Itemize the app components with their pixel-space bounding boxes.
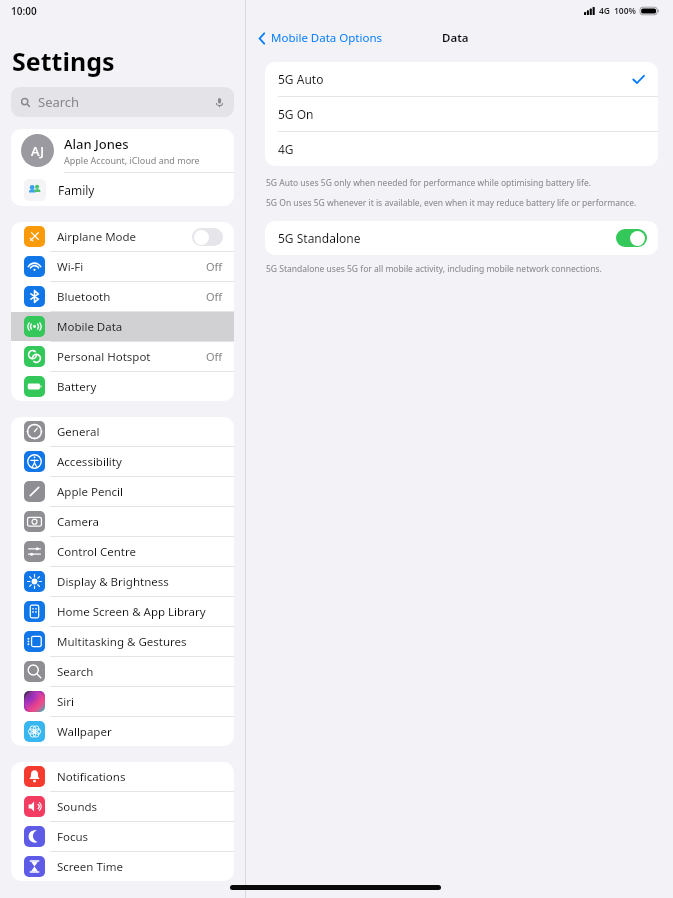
- button[interactable]: Wallpaper: [11, 717, 234, 746]
- staticText: Accessibility: [57, 454, 122, 470]
- staticText: Focus: [57, 829, 89, 845]
- button[interactable]: Display & Brightness: [11, 567, 234, 596]
- button[interactable]: Home Screen & App Library: [11, 597, 234, 626]
- button[interactable]: 5G Auto: [265, 62, 658, 96]
- button[interactable]: Focus: [11, 822, 234, 851]
- staticText: Display & Brightness: [57, 574, 169, 590]
- staticText: Data: [442, 30, 469, 46]
- button[interactable]: Personal Hotspot: [11, 342, 234, 371]
- button[interactable]: Multitasking & Gestures: [11, 627, 234, 656]
- staticText: Multitasking & Gestures: [57, 634, 187, 650]
- staticText: General: [57, 424, 100, 440]
- staticText: Off: [206, 349, 223, 364]
- staticText: Alan Jones: [64, 135, 129, 153]
- staticText: 5G Standalone: [278, 230, 361, 246]
- staticText: 5G On uses 5G whenever it is available, …: [266, 197, 637, 209]
- staticText: Mobile Data: [57, 319, 123, 335]
- staticText: Home Screen & App Library: [57, 604, 206, 620]
- staticText: Settings: [12, 44, 115, 78]
- button[interactable]: Apple Pencil: [11, 477, 234, 506]
- staticText: Camera: [57, 514, 99, 530]
- staticText: Mobile Data Options: [271, 30, 383, 46]
- staticText: 5G Auto uses 5G only when needed for per…: [266, 177, 592, 189]
- button[interactable]: Accessibility: [11, 447, 234, 476]
- staticText: 4G: [599, 5, 611, 17]
- staticText: 4G: [278, 141, 294, 157]
- button[interactable]: General: [11, 417, 234, 446]
- staticText: Off: [206, 289, 223, 304]
- button[interactable]: AJ: [11, 129, 234, 172]
- button[interactable]: Screen Time: [11, 852, 234, 881]
- staticText: 5G Auto: [278, 71, 324, 87]
- staticText: 10:00: [11, 4, 37, 18]
- staticText: 100%: [614, 5, 637, 17]
- button[interactable]: Mobile Data Options: [254, 27, 387, 49]
- button[interactable]: Battery: [11, 372, 234, 401]
- button[interactable]: Mobile Data: [11, 312, 234, 341]
- staticText: Personal Hotspot: [57, 349, 151, 365]
- staticText: Wi-Fi: [57, 259, 84, 275]
- button[interactable]: 4G: [265, 132, 658, 166]
- staticText: Apple Account, iCloud and more: [64, 154, 200, 166]
- staticText: AJ: [31, 142, 44, 160]
- button[interactable]: Toggle off: [192, 228, 223, 246]
- staticText: Notifications: [57, 769, 126, 785]
- button[interactable]: Sounds: [11, 792, 234, 821]
- button[interactable]: 5G On: [265, 97, 658, 131]
- button[interactable]: Search: [11, 87, 234, 117]
- staticText: Control Centre: [57, 544, 136, 560]
- staticText: 5G Standalone uses 5G for all mobile act…: [266, 263, 602, 275]
- staticText: Apple Pencil: [57, 484, 123, 500]
- button[interactable]: Search: [11, 657, 234, 686]
- staticText: Search: [38, 93, 80, 111]
- staticText: Battery: [57, 379, 97, 395]
- button[interactable]: Family: [11, 173, 234, 206]
- staticText: Bluetooth: [57, 289, 111, 305]
- button[interactable]: Camera: [11, 507, 234, 536]
- staticText: Sounds: [57, 799, 98, 815]
- staticText: Off: [206, 259, 223, 274]
- staticText: Search: [57, 664, 94, 680]
- button[interactable]: Bluetooth: [11, 282, 234, 311]
- staticText: Wallpaper: [57, 724, 112, 740]
- button[interactable]: Siri: [11, 687, 234, 716]
- button[interactable]: 5G Standalone: [265, 221, 658, 255]
- button[interactable]: Toggle on: [616, 229, 647, 247]
- button[interactable]: Wi-Fi: [11, 252, 234, 281]
- staticText: Airplane Mode: [57, 229, 137, 245]
- staticText: Family: [58, 182, 95, 198]
- staticText: Screen Time: [57, 859, 124, 875]
- staticText: 5G On: [278, 106, 314, 122]
- staticText: Siri: [57, 694, 74, 710]
- button[interactable]: Airplane Mode: [11, 222, 234, 251]
- button[interactable]: Notifications: [11, 762, 234, 791]
- button[interactable]: Control Centre: [11, 537, 234, 566]
